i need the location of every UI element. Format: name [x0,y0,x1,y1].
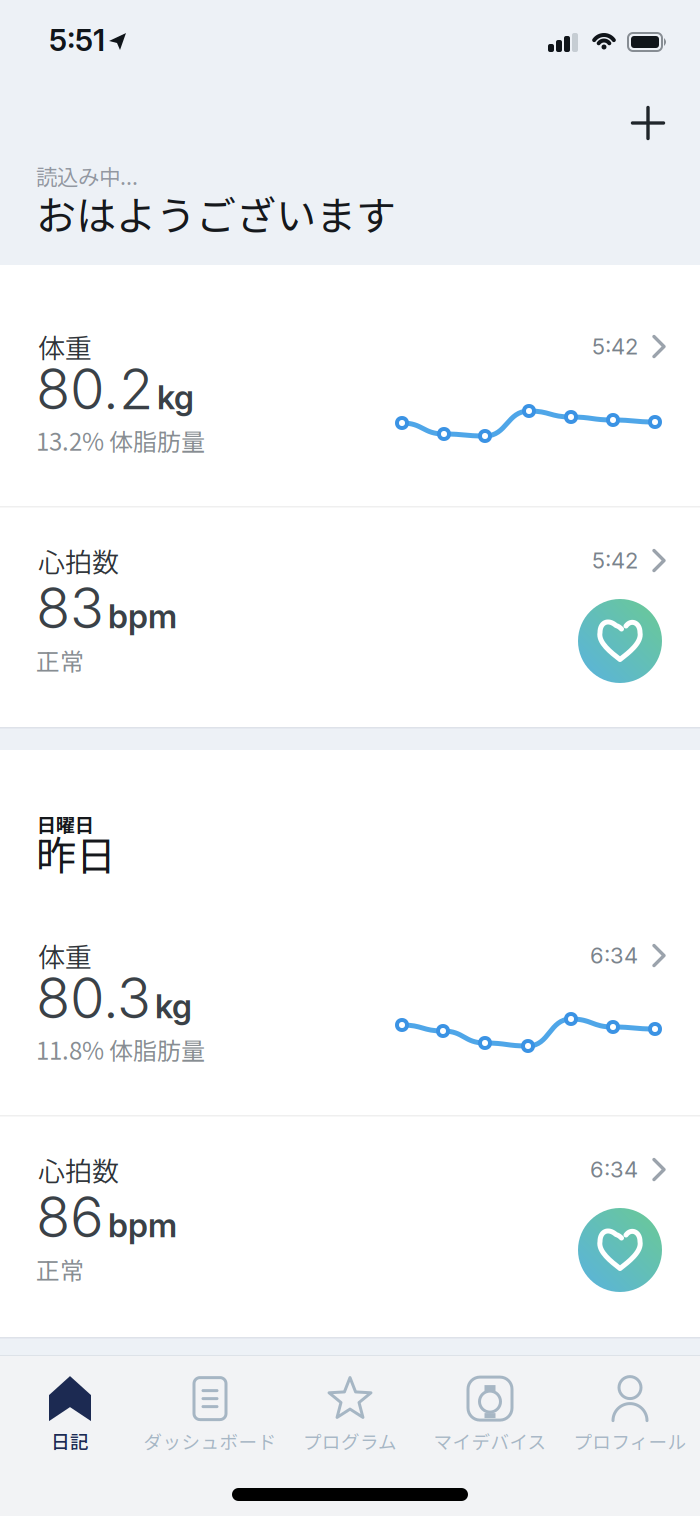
staticText: 13.2% 体脂肪量 [36,423,205,458]
staticText: 6:34 [590,1156,638,1183]
button[interactable]: プロフィール [560,1373,700,1457]
staticText: 6:34 [590,942,638,969]
staticText: 80.2 [36,355,153,423]
button[interactable]: 体重 [0,874,700,1115]
staticText: kg [157,377,194,417]
staticText: 心拍数 [38,1150,119,1189]
button[interactable]: 体重 [0,265,700,506]
staticText: 日記 [51,1428,89,1454]
staticText: 5:42 [592,547,638,574]
staticText: 正常 [36,1252,84,1287]
button[interactable]: ダッシュボード [140,1373,280,1457]
staticText: 5:51 [49,22,105,58]
staticText: kg [155,986,192,1026]
staticText: 5:42 [592,333,638,360]
staticText: 昨日 [36,824,116,882]
button[interactable]: Add measurement [620,95,676,151]
button[interactable]: 心拍数 [0,1117,700,1336]
button[interactable]: プログラム [280,1373,420,1457]
staticText: 日曜日 [37,810,94,837]
staticText: ダッシュボード [143,1428,276,1454]
staticText: 体重 [38,327,92,366]
staticText: プロフィール [573,1428,686,1454]
staticText: 80.3 [36,964,151,1032]
staticText: おはようございます [36,184,396,242]
staticText: 正常 [36,643,84,678]
staticText: bpm [108,596,177,636]
staticText: 読込み中... [36,160,138,191]
button[interactable]: 心拍数 [0,508,700,727]
button[interactable]: マイデバイス [420,1373,560,1457]
button[interactable]: 日記 [0,1373,140,1457]
staticText: bpm [108,1205,177,1245]
staticText: 心拍数 [38,541,119,580]
staticText: マイデバイス [433,1428,546,1454]
staticText: 11.8% 体脂肪量 [36,1032,205,1067]
staticText: 体重 [38,936,92,975]
staticText: 86 [36,1183,104,1251]
staticText: プログラム [303,1428,397,1454]
staticText: 83 [36,574,104,642]
